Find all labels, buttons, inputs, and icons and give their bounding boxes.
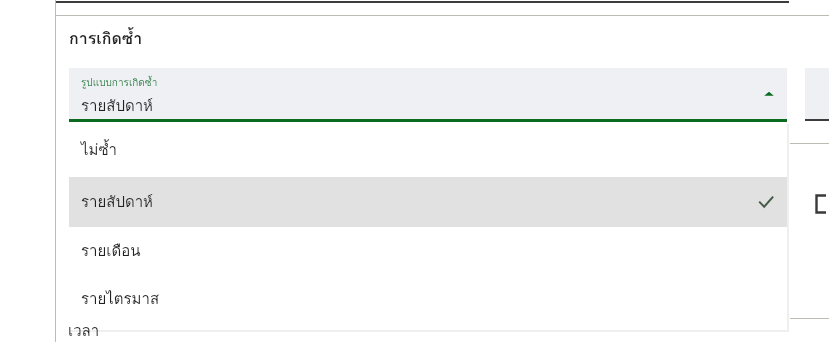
staticText: ไม่ซ้ำ — [81, 138, 118, 162]
staticText: การเกิดซ้ำ — [69, 26, 143, 51]
other: Selected — [757, 193, 775, 211]
staticText: รูปแบบการเกิดซ้ำ — [81, 75, 158, 91]
button[interactable]: รายสัปดาห์ — [69, 177, 787, 227]
button[interactable]: รูปแบบการเกิดซ้ำ — [69, 68, 787, 122]
staticText: รายเดือน — [81, 239, 141, 263]
button[interactable]: รายเดือน — [69, 227, 787, 275]
button[interactable]: รายไตรมาส — [69, 275, 787, 323]
staticText: รายสัปดาห์ — [81, 190, 153, 214]
staticText: รายไตรมาส — [81, 287, 160, 311]
staticText: เวลา — [68, 324, 100, 337]
button[interactable]: ไม่ซ้ำ — [69, 122, 787, 177]
staticText: รายสัปดาห์ — [81, 94, 153, 118]
other: Collapse dropdown — [762, 87, 776, 101]
other: Checkbox — [814, 194, 829, 214]
